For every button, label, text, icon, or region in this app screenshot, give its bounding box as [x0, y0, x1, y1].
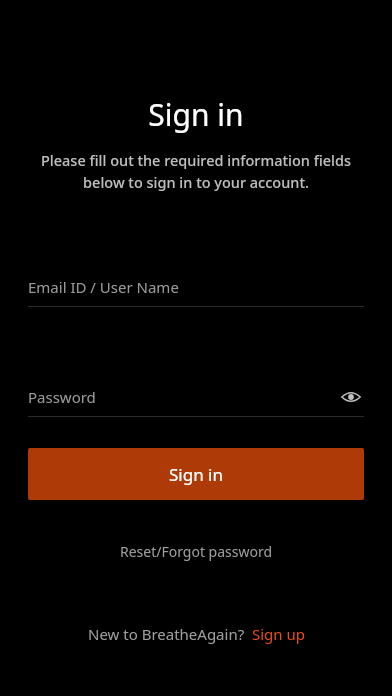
- staticText: Sign in: [0, 94, 392, 135]
- staticText: New to BreatheAgain?: [88, 624, 245, 644]
- staticText: Password: [28, 387, 338, 407]
- button[interactable]: Sign in: [28, 448, 364, 500]
- staticText: Email ID / User Name: [28, 277, 364, 297]
- button[interactable]: Password: [28, 384, 364, 417]
- button[interactable]: Email ID / User Name: [28, 274, 364, 307]
- button[interactable]: Show password: [338, 384, 364, 410]
- staticText: Sign up: [252, 624, 305, 644]
- staticText: Sign in: [169, 463, 223, 486]
- button[interactable]: Reset/Forgot password: [108, 536, 285, 567]
- staticText: Reset/Forgot password: [120, 542, 273, 561]
- staticText: Please fill out the required information…: [34, 150, 358, 192]
- button[interactable]: Sign up: [252, 624, 305, 644]
